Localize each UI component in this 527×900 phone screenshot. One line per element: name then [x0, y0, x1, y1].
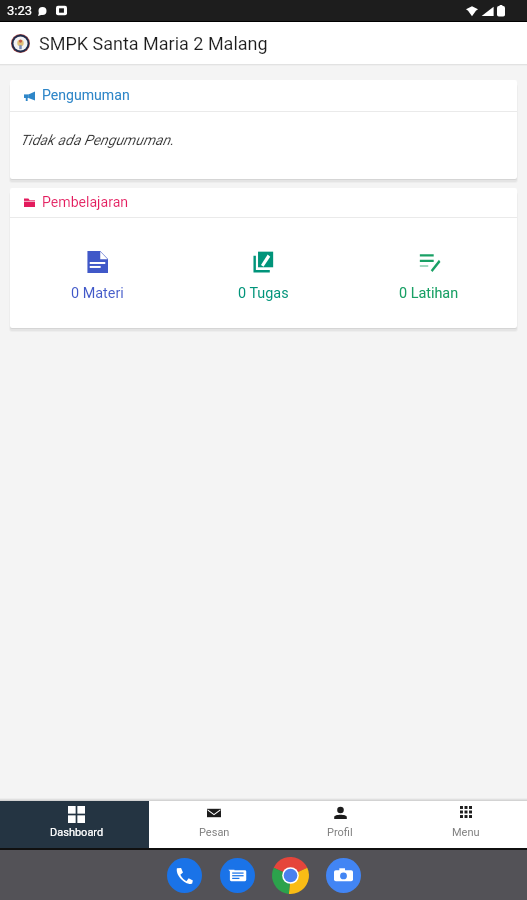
staticText: Menu [452, 826, 480, 839]
staticText: 0 Latihan [399, 285, 459, 302]
button[interactable]: 0 Latihan [346, 244, 512, 302]
button[interactable]: Phone [158, 850, 211, 900]
button[interactable]: Camera [317, 850, 370, 900]
button[interactable]: 0 Tugas [180, 244, 346, 302]
button[interactable]: Profil [275, 801, 401, 848]
button[interactable]: Messages [211, 850, 264, 900]
button[interactable]: Chrome [264, 850, 317, 900]
staticText: Profil [327, 826, 353, 839]
button[interactable]: 0 Materi [15, 244, 180, 302]
staticText: 3:23 [7, 3, 33, 18]
staticText: Dashboard [50, 826, 104, 839]
staticText: 0 Materi [71, 285, 124, 302]
staticText: SMPK Santa Maria 2 Malang [39, 33, 268, 54]
button[interactable]: Dashboard [0, 801, 149, 848]
button[interactable]: Pesan [149, 801, 275, 848]
button[interactable]: Menu [401, 801, 527, 848]
staticText: 0 Tugas [238, 285, 289, 302]
staticText: Tidak ada Pengumuman. [20, 132, 174, 149]
staticText: Pesan [199, 826, 230, 839]
staticText: Pengumuman [42, 87, 130, 104]
staticText: Pembelajaran [42, 194, 129, 211]
